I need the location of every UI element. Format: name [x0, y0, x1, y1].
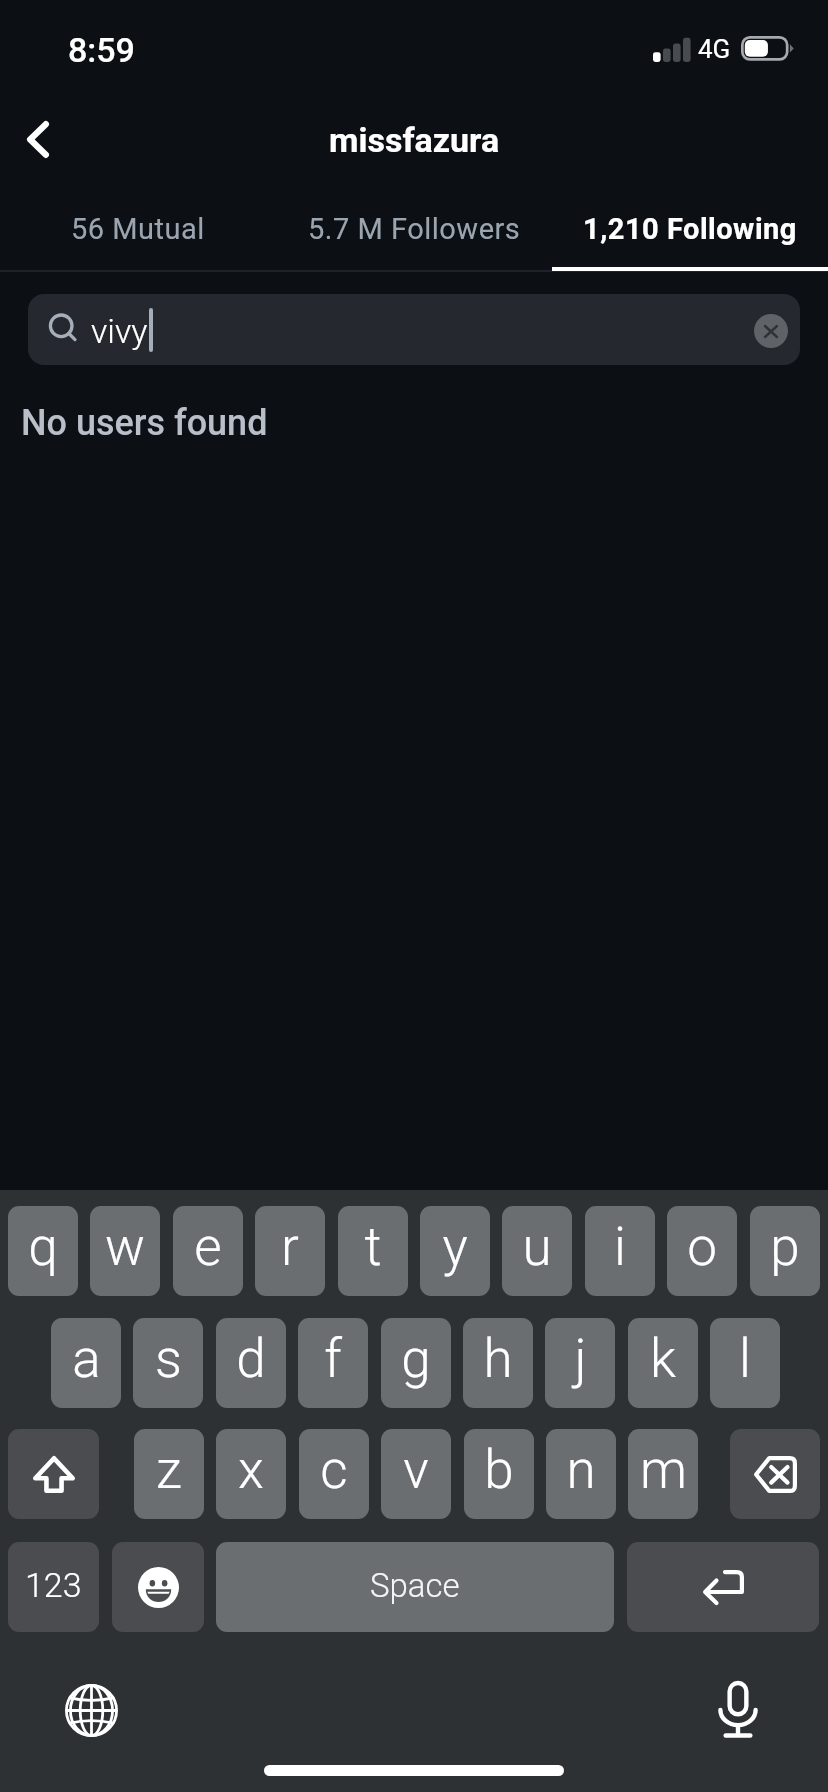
button[interactable]: a [51, 1318, 121, 1408]
button[interactable]: r [255, 1206, 325, 1296]
staticText: t [364, 1216, 382, 1278]
button[interactable]: g [381, 1318, 451, 1408]
button[interactable]: v [381, 1429, 451, 1519]
staticText: r [281, 1216, 299, 1278]
staticText: 4G [698, 34, 731, 64]
button[interactable]: t [338, 1206, 408, 1296]
staticText: No users found [21, 402, 268, 444]
staticText: c [320, 1439, 348, 1501]
button[interactable]: Emoji [112, 1542, 204, 1632]
button[interactable]: q [8, 1206, 78, 1296]
staticText: 1,210 Following [583, 212, 797, 246]
button[interactable]: Clear search [754, 314, 788, 348]
staticText: z [156, 1439, 182, 1501]
staticText: k [650, 1328, 676, 1390]
staticText: missfazura [329, 120, 500, 160]
staticText: d [236, 1328, 266, 1390]
staticText: o [687, 1216, 717, 1278]
staticText: x [238, 1439, 264, 1501]
staticText: u [522, 1216, 552, 1278]
staticText: h [483, 1328, 513, 1390]
button[interactable]: 123 [8, 1542, 99, 1632]
button[interactable]: Backspace [730, 1429, 820, 1519]
staticText: 5.7 M Followers [308, 212, 521, 246]
button[interactable]: y [420, 1206, 490, 1296]
staticText: m [640, 1439, 687, 1501]
button[interactable]: m [628, 1429, 698, 1519]
button[interactable]: b [464, 1429, 534, 1519]
button[interactable]: s [133, 1318, 203, 1408]
staticText: e [194, 1216, 222, 1278]
button[interactable]: h [463, 1318, 533, 1408]
button[interactable]: n [546, 1429, 616, 1519]
button[interactable]: vivy [28, 294, 800, 365]
button[interactable]: u [502, 1206, 572, 1296]
button[interactable]: e [173, 1206, 243, 1296]
staticText: b [484, 1439, 514, 1501]
staticText: 8:59 [68, 30, 135, 70]
staticText: Space [370, 1566, 460, 1605]
staticText: 123 [25, 1565, 82, 1605]
staticText: vivy [91, 311, 148, 351]
button[interactable]: Voice input [703, 1675, 773, 1745]
staticText: s [155, 1328, 182, 1390]
staticText: n [566, 1439, 596, 1501]
staticText: f [324, 1328, 342, 1390]
button[interactable]: i [585, 1206, 655, 1296]
staticText: g [401, 1328, 431, 1390]
staticText: q [28, 1216, 58, 1278]
staticText: v [403, 1439, 429, 1501]
button[interactable]: 1,210 Following [552, 188, 828, 271]
button[interactable]: l [710, 1318, 780, 1408]
staticText: w [105, 1216, 145, 1278]
button[interactable]: p [750, 1206, 820, 1296]
button[interactable]: Change keyboard language [56, 1675, 126, 1745]
staticText: y [442, 1216, 468, 1278]
button[interactable]: x [216, 1429, 286, 1519]
button[interactable]: z [134, 1429, 204, 1519]
button[interactable]: f [298, 1318, 368, 1408]
staticText: j [574, 1328, 587, 1390]
staticText: p [770, 1216, 800, 1278]
button[interactable]: d [216, 1318, 286, 1408]
button[interactable]: Back [0, 94, 84, 186]
button[interactable]: 5.7 M Followers [276, 188, 552, 271]
button[interactable]: o [667, 1206, 737, 1296]
button[interactable]: Shift [8, 1429, 99, 1519]
button[interactable]: k [628, 1318, 698, 1408]
button[interactable]: 56 Mutual [0, 188, 276, 271]
button[interactable]: Enter [627, 1542, 819, 1632]
button[interactable]: c [299, 1429, 369, 1519]
button[interactable]: w [90, 1206, 160, 1296]
button[interactable]: j [545, 1318, 615, 1408]
staticText: l [739, 1328, 751, 1390]
staticText: a [72, 1328, 101, 1390]
staticText: i [614, 1216, 626, 1278]
button[interactable]: Space [216, 1542, 614, 1632]
staticText: 56 Mutual [71, 212, 205, 246]
